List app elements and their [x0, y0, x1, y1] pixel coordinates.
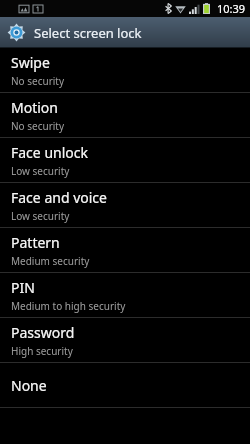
staticText: Medium security: [11, 254, 90, 268]
staticText: Low security: [11, 209, 70, 223]
staticText: Select screen lock: [34, 24, 142, 42]
button[interactable]: None: [0, 363, 250, 407]
button[interactable]: Face and voice: [0, 183, 250, 227]
other: Settings: [7, 23, 26, 42]
button[interactable]: PIN: [0, 273, 250, 317]
staticText: High security: [11, 344, 73, 358]
staticText: No security: [11, 119, 65, 133]
staticText: Face and voice: [11, 188, 107, 207]
button[interactable]: Password: [0, 318, 250, 362]
staticText: Face unlock: [11, 143, 88, 162]
staticText: PIN: [11, 278, 35, 297]
staticText: Low security: [11, 164, 70, 178]
staticText: None: [11, 376, 47, 395]
staticText: Swipe: [11, 53, 50, 72]
staticText: No security: [11, 74, 65, 88]
button[interactable]: Motion: [0, 93, 250, 137]
staticText: Password: [11, 323, 75, 342]
button[interactable]: Pattern: [0, 228, 250, 272]
staticText: Motion: [11, 98, 58, 117]
button[interactable]: Swipe: [0, 48, 250, 92]
staticText: Pattern: [11, 233, 60, 252]
staticText: 10:39: [217, 1, 246, 16]
staticText: Medium to high security: [11, 299, 126, 313]
button[interactable]: Face unlock: [0, 138, 250, 182]
